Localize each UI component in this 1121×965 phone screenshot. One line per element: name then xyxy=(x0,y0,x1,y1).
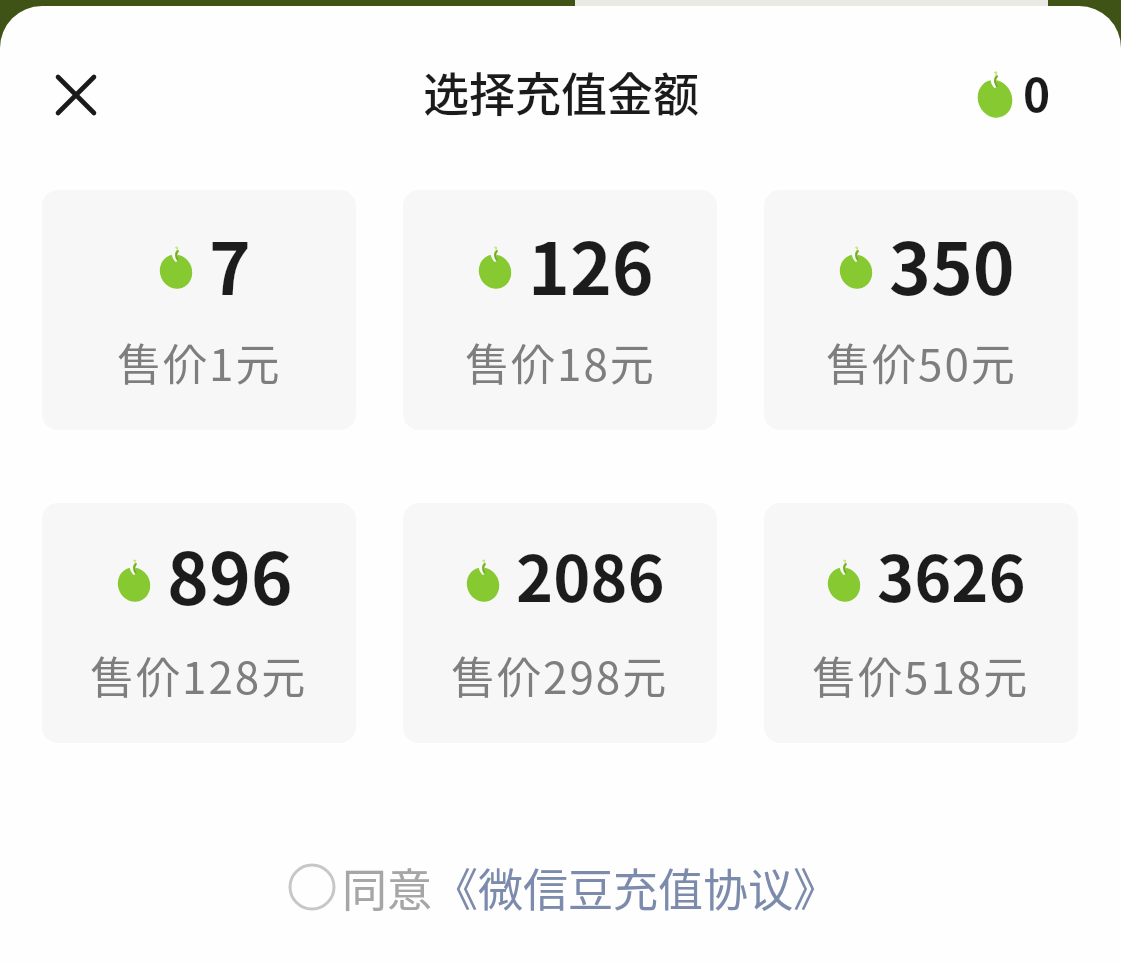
button[interactable] xyxy=(978,74,1012,118)
button[interactable]: 7 xyxy=(42,190,356,430)
staticText: 售价518元 xyxy=(812,643,1030,703)
staticText: 0 xyxy=(1023,59,1051,126)
staticText: 126 xyxy=(528,213,654,303)
staticText: 同意 xyxy=(342,855,433,919)
staticText: 7 xyxy=(209,213,251,303)
staticText: 售价50元 xyxy=(826,330,1017,390)
staticText: 《微信豆充值协议》 xyxy=(433,855,839,919)
staticText: 售价1元 xyxy=(117,330,282,390)
button[interactable]: 2086 xyxy=(403,503,717,743)
button[interactable]: 同意 xyxy=(3,855,1121,919)
button[interactable]: 350 xyxy=(764,190,1078,430)
staticText: 售价18元 xyxy=(465,330,656,390)
button[interactable]: 126 xyxy=(403,190,717,430)
staticText: 896 xyxy=(167,523,293,613)
staticText: 售价128元 xyxy=(90,643,308,703)
button[interactable] xyxy=(47,66,105,124)
staticText: 选择充值金额 xyxy=(423,58,699,125)
staticText: 2086 xyxy=(516,529,665,619)
button[interactable]: 3626 xyxy=(764,503,1078,743)
staticText: 售价298元 xyxy=(451,643,669,703)
staticText: 350 xyxy=(889,213,1015,303)
button[interactable]: 896 xyxy=(42,503,356,743)
staticText: 3626 xyxy=(877,529,1026,619)
